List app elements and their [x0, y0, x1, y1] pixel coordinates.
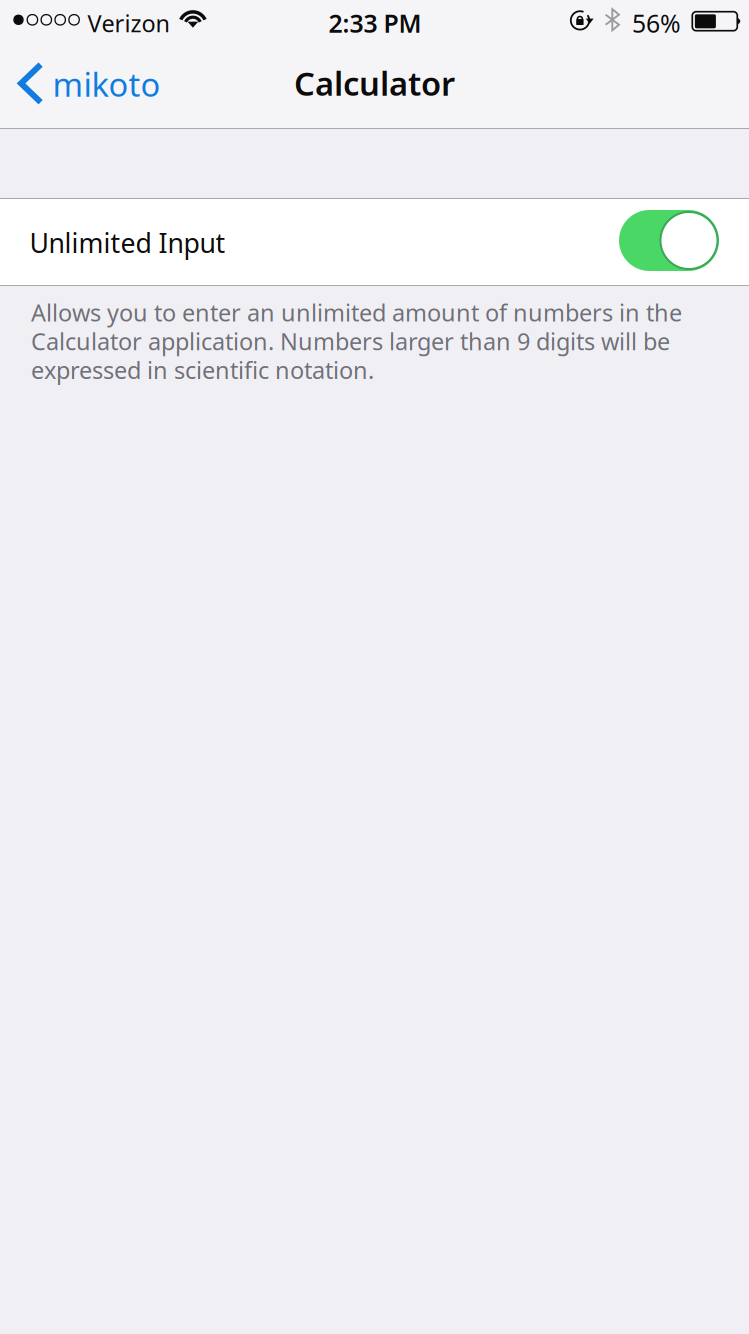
- staticText: 56%: [632, 7, 681, 40]
- staticText: 2:33 PM: [328, 7, 421, 40]
- button[interactable]: On: [0, 199, 749, 285]
- staticText: Unlimited Input: [29, 225, 225, 260]
- staticText: Calculator: [294, 61, 455, 105]
- staticText: Allows you to enter an unlimited amount …: [31, 298, 682, 384]
- staticText: Verizon: [87, 8, 170, 39]
- staticText: mikoto: [52, 62, 160, 106]
- button[interactable]: Back to mikoto: [0, 40, 160, 128]
